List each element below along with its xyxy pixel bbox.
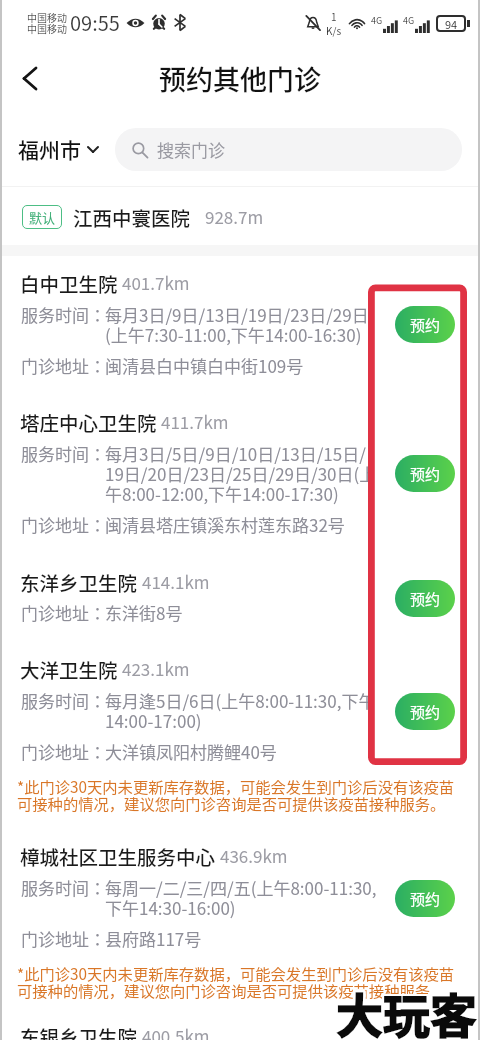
staticText: 每周一/二/三/四/五(上午8:00-11:30, 下午14:30-16:00) (105, 875, 377, 920)
button[interactable]: 默认 (0, 188, 480, 245)
staticText: 大玩客 (335, 980, 476, 1040)
staticText: 大玩客 (335, 978, 476, 1040)
button[interactable]: 东洋乡卫生院 (0, 568, 480, 625)
staticText: 大玩客 (335, 979, 476, 1040)
staticText: 423.1km (122, 656, 190, 681)
staticText: 门诊地址： (21, 600, 105, 625)
staticText: 塔庄中心卫生院 (20, 408, 157, 436)
staticText: 大玩客 (337, 980, 478, 1040)
staticText: 樟城社区卫生服务中心 (20, 842, 216, 870)
staticText: 411.7km (161, 409, 229, 434)
button[interactable]: 返回 (8, 56, 52, 100)
staticText: 东洋街8号 (105, 600, 183, 625)
staticText: 服务时间： (21, 875, 105, 900)
staticText: 县府路117号 (105, 926, 202, 951)
staticText: 每月3日/5日/9日/10日/13日/15日/ 19日/20日/23日/25日/… (105, 441, 377, 506)
staticText: 大玩客 (334, 979, 475, 1040)
staticText: 闽清县塔庄镇溪东村莲东路32号 (105, 512, 345, 537)
staticText: 预约 (410, 588, 441, 610)
staticText: 门诊地址： (21, 353, 105, 378)
staticText: 中国移动 中国移动 (27, 10, 67, 36)
button[interactable]: 樟城社区卫生服务中心 (0, 842, 480, 1001)
staticText: 服务时间： (21, 688, 105, 713)
staticText: 大玩客 (336, 979, 477, 1040)
staticText: 大玩客 (337, 979, 478, 1040)
staticText: 400.5km (142, 1023, 210, 1040)
staticText: K/s (326, 23, 342, 37)
staticText: *此门诊30天内未更新库存数据，可能会发生到门诊后没有该疫苗可接种的情况，建议您… (17, 962, 458, 1001)
button[interactable]: 预约 (395, 580, 455, 617)
staticText: 大玩客 (337, 976, 478, 1040)
staticText: 大玩客 (334, 978, 475, 1040)
staticText: 大玩客 (334, 980, 475, 1040)
staticText: 预约其他门诊 (159, 59, 321, 98)
staticText: 414.1km (142, 569, 210, 594)
staticText: 大玩客 (338, 978, 479, 1040)
staticText: 门诊地址： (21, 739, 105, 764)
staticText: 大玩客 (338, 976, 479, 1040)
staticText: 大洋镇凤阳村腾鲤40号 (105, 739, 277, 764)
staticText: 搜索门诊 (157, 137, 225, 162)
button[interactable]: 福州市 (18, 134, 99, 164)
staticText: 94 (445, 16, 458, 32)
staticText: 大玩客 (337, 978, 478, 1040)
staticText: 1 (331, 9, 337, 23)
staticText: 大洋卫生院 (20, 655, 118, 683)
staticText: 门诊地址： (21, 512, 105, 537)
staticText: 09:55 (70, 8, 120, 37)
staticText: 服务时间： (21, 441, 105, 466)
staticText: 福州市 (18, 134, 81, 164)
staticText: 大玩客 (336, 976, 477, 1040)
button[interactable]: 塔庄中心卫生院 (0, 408, 480, 537)
button[interactable]: 预约 (395, 693, 455, 730)
staticText: 江西中寰医院 (73, 203, 191, 231)
button[interactable]: 白中卫生院 (0, 269, 480, 378)
staticText: *此门诊30天内未更新库存数据，可能会发生到门诊后没有该疫苗可接种的情况，建议您… (17, 775, 458, 814)
staticText: 4G (403, 14, 415, 27)
staticText: 401.7km (122, 270, 190, 295)
staticText: 大玩客 (338, 977, 479, 1040)
staticText: 预约 (410, 701, 441, 723)
staticText: 大玩客 (334, 977, 475, 1040)
staticText: 大玩客 (335, 977, 476, 1040)
staticText: 预约 (410, 463, 441, 485)
staticText: 东银乡卫生院 (20, 1022, 138, 1040)
button[interactable]: 搜索门诊 (115, 128, 462, 171)
staticText: 大玩客 (338, 980, 479, 1040)
staticText: 默认 (29, 208, 56, 227)
staticText: 服务时间： (21, 302, 105, 327)
staticText: 大玩客 (336, 977, 477, 1040)
staticText: 大玩客 (334, 976, 475, 1040)
staticText: 大玩客 (337, 977, 478, 1040)
button[interactable]: 东银乡卫生院 (0, 1022, 480, 1040)
staticText: 每月逢5日/6日(上午8:00-11:30,下午 14:00-17:00) (105, 688, 376, 733)
staticText: 门诊地址： (21, 926, 105, 951)
button[interactable]: 大洋卫生院 (0, 655, 480, 814)
staticText: 大玩客 (336, 978, 477, 1040)
staticText: 预约 (410, 314, 441, 336)
staticText: 白中卫生院 (20, 269, 118, 297)
staticText: 928.7m (205, 204, 264, 229)
staticText: 436.9km (220, 843, 288, 868)
staticText: 大玩客 (336, 980, 477, 1040)
staticText: 东洋乡卫生院 (20, 568, 138, 596)
button[interactable]: 预约 (395, 306, 455, 343)
staticText: 闽清县白中镇白中街109号 (105, 353, 304, 378)
button[interactable]: 预约 (395, 880, 455, 917)
staticText: 4G (371, 14, 383, 27)
staticText: 大玩客 (338, 979, 479, 1040)
staticText: 大玩客 (335, 976, 476, 1040)
staticText: 每月3日/9日/13日/19日/23日/29日 (上午7:30-11:00,下午… (105, 302, 369, 347)
button[interactable]: 预约 (395, 455, 455, 492)
staticText: 预约 (410, 888, 441, 910)
